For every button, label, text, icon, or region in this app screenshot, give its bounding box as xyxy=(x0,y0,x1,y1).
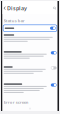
button[interactable] xyxy=(2,23,57,32)
button[interactable]: Back xyxy=(2,5,6,11)
staticText: Display xyxy=(7,5,27,12)
staticText: Status bar xyxy=(4,18,25,23)
button[interactable] xyxy=(2,80,57,98)
button[interactable]: Search xyxy=(53,5,57,11)
button[interactable] xyxy=(2,64,57,80)
button[interactable] xyxy=(2,32,57,49)
staticText: Error screen xyxy=(4,100,29,105)
button[interactable] xyxy=(2,49,57,64)
